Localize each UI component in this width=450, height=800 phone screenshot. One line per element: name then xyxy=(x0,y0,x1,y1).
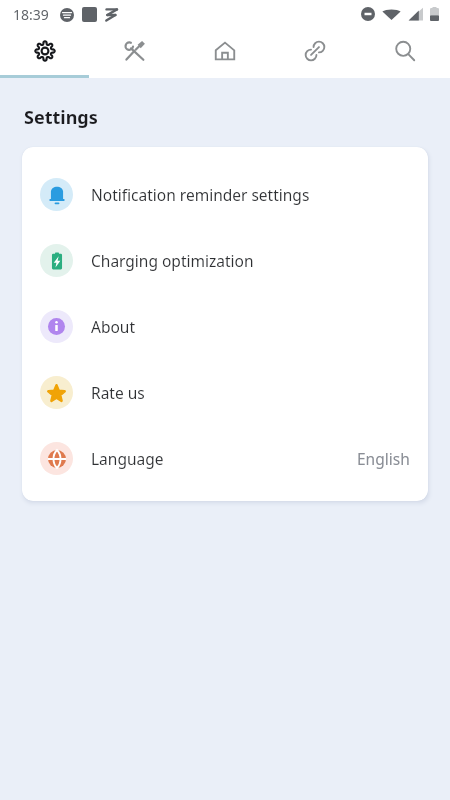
staticText: Settings xyxy=(24,105,98,130)
button[interactable]: Language xyxy=(22,425,428,491)
staticText: English xyxy=(357,448,410,469)
button[interactable]: Tools xyxy=(90,28,180,78)
button[interactable]: Settings xyxy=(0,28,90,78)
button[interactable]: Home xyxy=(180,28,270,78)
staticText: Language xyxy=(91,448,164,469)
button[interactable]: Rate us xyxy=(22,359,428,425)
staticText: Rate us xyxy=(91,382,145,403)
button[interactable]: About xyxy=(22,293,428,359)
button[interactable]: Charging optimization xyxy=(22,227,428,293)
staticText: Charging optimization xyxy=(91,250,254,271)
button[interactable]: Links xyxy=(270,28,360,78)
button[interactable]: Notification reminder settings xyxy=(22,161,428,227)
staticText: About xyxy=(91,316,135,337)
button[interactable]: Search xyxy=(360,28,450,78)
staticText: Notification reminder settings xyxy=(91,184,310,205)
staticText: 18:39 xyxy=(13,5,49,24)
